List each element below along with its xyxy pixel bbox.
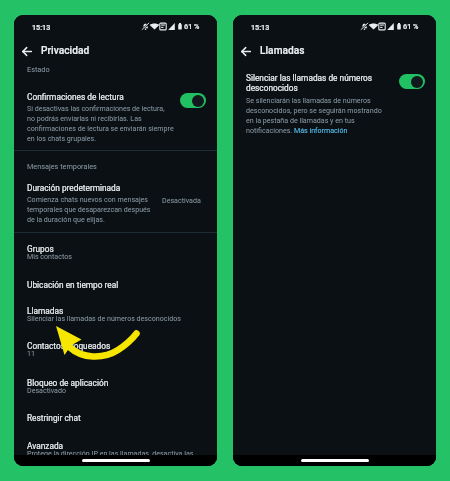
staticText: Confirmaciones de lectura: [27, 92, 124, 102]
staticText: Silenciar las llamadas de números descon…: [246, 73, 387, 93]
staticText: Mis contactos: [27, 252, 72, 260]
button[interactable]: Silenciar las llamadas de números descon…: [233, 73, 436, 134]
button[interactable]: Back: [18, 42, 36, 60]
staticText: 61 %: [184, 22, 200, 31]
staticText: Llamadas: [260, 45, 305, 57]
staticText: Llamadas: [27, 306, 64, 316]
staticText: 11: [27, 349, 35, 357]
button[interactable]: Toggle: [399, 74, 425, 89]
button[interactable]: Duración predeterminada: [27, 183, 206, 223]
button[interactable]: Restringir chat: [27, 404, 206, 432]
staticText: Contactos bloqueados: [27, 341, 111, 351]
button[interactable]: Ubicación en tiempo real: [27, 271, 206, 297]
button[interactable]: Contactos bloqueados: [27, 332, 206, 369]
staticText: Comienza chats nuevos con mensajes tempo…: [27, 195, 155, 223]
staticText: Duración predeterminada: [27, 183, 121, 193]
staticText: Bloqueo de aplicación: [27, 378, 109, 388]
staticText: Desactivada: [162, 196, 201, 204]
staticText: 15:13: [251, 23, 270, 31]
staticText: Avanzada: [27, 441, 64, 451]
staticText: 15:13: [32, 23, 51, 31]
staticText: Silenciar las llamadas de números descon…: [27, 314, 181, 322]
staticText: Mensajes temporales: [27, 162, 97, 171]
button[interactable]: Grupos: [27, 235, 206, 271]
staticText: Se silenciarán las llamadas de números d…: [246, 96, 387, 134]
button[interactable]: Bloqueo de aplicación: [27, 369, 206, 404]
staticText: Privacidad: [41, 45, 90, 57]
staticText: Protege la dirección IP en las llamadas,…: [27, 449, 194, 457]
staticText: Desactivado: [27, 386, 66, 394]
staticText: Ubicación en tiempo real: [27, 280, 119, 290]
button[interactable]: Confirmaciones de lectura: [27, 92, 206, 142]
staticText: 61 %: [403, 22, 419, 31]
staticText: Grupos: [27, 244, 54, 254]
staticText: Restringir chat: [27, 413, 81, 423]
button[interactable]: Llamadas: [27, 297, 206, 332]
button[interactable]: Toggle: [180, 93, 206, 108]
button[interactable]: Back: [237, 42, 255, 60]
button[interactable]: Avanzada: [27, 432, 206, 462]
staticText: Si desactivas las confirmaciones de lect…: [27, 104, 174, 142]
staticText: Estado: [27, 65, 50, 74]
